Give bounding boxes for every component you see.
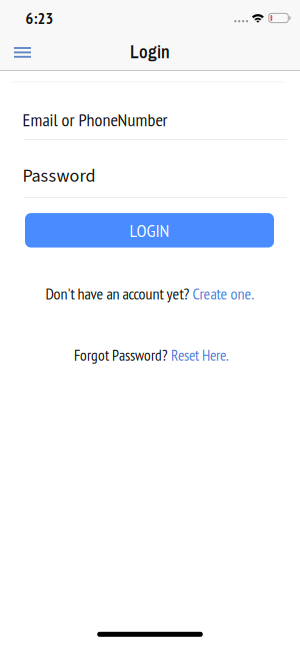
button[interactable]: Create one. [192,283,254,304]
button[interactable]: Email or PhoneNumber [0,97,300,141]
button[interactable]: Reset Here. [171,345,229,365]
button[interactable]: LOGIN [25,213,274,248]
staticText: Reset Here. [171,345,229,365]
button[interactable]: Password [0,154,300,198]
staticText: Create one. [192,283,254,304]
staticText: Email or PhoneNumber [22,108,167,131]
staticText: Forgot Password? [74,345,171,365]
staticText: 6:23 [25,7,53,28]
staticText: Login [130,40,170,64]
staticText: Don't have an account yet? [45,283,192,304]
staticText: LOGIN [129,218,169,242]
staticText: Password [22,163,95,189]
button[interactable]: Menu [14,47,31,58]
